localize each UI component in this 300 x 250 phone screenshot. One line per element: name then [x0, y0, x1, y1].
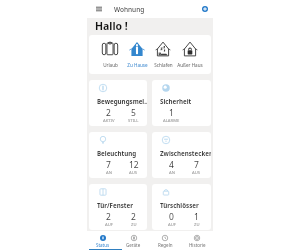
button[interactable]: Historie	[181, 235, 213, 250]
staticText: Sicherheit	[160, 97, 192, 105]
staticText: Urlaub	[103, 62, 118, 68]
staticText: Schlafen	[154, 62, 173, 68]
staticText: AUS	[129, 170, 138, 176]
button[interactable]: Beleuchtung	[89, 132, 147, 178]
staticText: Wohnung	[114, 5, 145, 14]
button[interactable]: Urlaub	[97, 41, 123, 68]
button[interactable]: Regeln	[149, 235, 181, 250]
staticText: AKTIV	[103, 118, 115, 124]
staticText: AUS	[192, 170, 201, 176]
button[interactable]: Add device	[199, 3, 211, 15]
staticText: AN	[169, 170, 175, 176]
staticText: 5	[131, 107, 136, 119]
staticText: AUF	[168, 222, 176, 228]
staticText: Bewegungsmel...	[97, 97, 147, 105]
button[interactable]: Geräte	[118, 235, 149, 250]
staticText: 1	[194, 211, 199, 223]
staticText: 2	[106, 211, 111, 223]
staticText: ALARME	[163, 118, 180, 124]
staticText: 1	[169, 107, 174, 119]
staticText: Historie	[189, 242, 206, 248]
staticText: 2	[106, 107, 111, 119]
button[interactable]: Zwischenstecker	[152, 132, 211, 178]
staticText: ZU	[194, 222, 200, 228]
staticText: 7	[194, 159, 199, 171]
staticText: Status	[96, 242, 110, 248]
button[interactable]: Sicherheit	[152, 80, 211, 126]
staticText: 2	[131, 211, 136, 223]
staticText: Zwischenstecker	[160, 149, 211, 157]
staticText: Hallo !	[95, 19, 128, 33]
button[interactable]: Türschlösser	[152, 184, 211, 230]
staticText: ZU	[131, 222, 137, 228]
staticText: Außer Haus	[177, 62, 203, 68]
staticText: 4	[169, 159, 174, 171]
button[interactable]: Menu	[93, 3, 105, 15]
button[interactable]: Status	[87, 235, 118, 250]
button[interactable]: Tür/Fenster	[89, 184, 147, 230]
staticText: STILL	[128, 118, 139, 124]
staticText: 12	[129, 159, 139, 171]
staticText: Regeln	[158, 242, 173, 248]
staticText: Geräte	[126, 242, 141, 248]
staticText: AUF	[105, 222, 113, 228]
staticText: Tür/Fenster	[97, 201, 133, 209]
button[interactable]: Schlafen	[150, 41, 176, 68]
staticText: 7	[106, 159, 111, 171]
button[interactable]: Zu Hause	[124, 41, 150, 68]
staticText: AN	[106, 170, 112, 176]
staticText: Beleuchtung	[97, 149, 137, 157]
button[interactable]: Bewegungsmel...	[89, 80, 147, 126]
staticText: Türschlösser	[160, 201, 199, 209]
staticText: 0	[169, 211, 174, 223]
button[interactable]: Außer Haus	[177, 41, 203, 68]
staticText: Zu Hause	[127, 62, 148, 68]
